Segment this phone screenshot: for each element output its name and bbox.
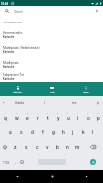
staticText: 3 [27, 112, 29, 114]
staticText: Meine [83, 91, 89, 93]
button[interactable]: Shift [0, 139, 10, 154]
staticText: w [15, 115, 19, 121]
button[interactable]: 6 [53, 109, 63, 124]
staticText: 10:54 [1, 2, 8, 5]
staticText: Last viewed on map [3, 21, 22, 23]
button[interactable]: 2 [11, 109, 22, 124]
staticText: Karlsruhe [3, 36, 15, 39]
button[interactable]: c [32, 139, 42, 154]
button[interactable]: Search [82, 154, 103, 170]
staticText: i [77, 115, 79, 121]
button[interactable]: b [52, 139, 62, 154]
button[interactable]: Meine [69, 82, 103, 96]
staticText: 4 [37, 112, 39, 114]
button[interactable]: v [42, 139, 52, 154]
button[interactable]: Home [35, 170, 69, 183]
button[interactable]: 9 [83, 109, 93, 124]
button[interactable]: Emoji [18, 154, 26, 170]
staticText: 6 [57, 112, 59, 114]
button[interactable]: g [48, 124, 58, 139]
button[interactable]: 3 [22, 109, 33, 124]
staticText: q [4, 115, 7, 121]
staticText: Marktplatz (Hebelstraße) [3, 46, 40, 50]
button[interactable]: j [68, 124, 78, 139]
button[interactable]: m [72, 139, 82, 154]
button[interactable]: , [12, 154, 18, 170]
staticText: u [67, 115, 70, 121]
button[interactable]: Voice input [92, 96, 103, 109]
staticText: p [97, 115, 100, 121]
button[interactable]: More suggestions [0, 96, 7, 109]
button[interactable]: Search [0, 6, 14, 16]
button[interactable]: a [5, 124, 16, 139]
staticText: Karlsruhe [3, 78, 15, 81]
staticText: y [57, 115, 60, 121]
staticText: l [92, 129, 94, 135]
staticText: thanks [15, 101, 24, 105]
staticText: z [14, 144, 17, 150]
staticText: o [87, 115, 90, 121]
button[interactable]: 7 [63, 109, 73, 124]
staticText: Karlsruhe [3, 66, 15, 69]
button[interactable]: Backspace [82, 139, 103, 154]
staticText: 1 [5, 112, 7, 114]
button[interactable]: Recent apps [69, 170, 103, 183]
button[interactable]: f [38, 124, 48, 139]
staticText: h [62, 129, 65, 135]
button[interactable]: 1 [0, 109, 11, 124]
staticText: Karte [50, 91, 55, 93]
staticText: 7 [67, 112, 69, 114]
button[interactable]: Back [0, 170, 35, 183]
staticText: t [47, 115, 49, 121]
button[interactable]: x [21, 139, 32, 154]
staticText: r [37, 115, 39, 121]
button[interactable]: Abfahrten [0, 82, 35, 96]
button[interactable]: Marktplatz [0, 57, 103, 72]
button[interactable]: Herrenstraße [0, 27, 103, 42]
staticText: 2 [16, 112, 18, 114]
staticText: d [31, 129, 34, 135]
button[interactable]: Marktplatz (Hebelstraße) [0, 42, 103, 57]
staticText: 9 [87, 112, 89, 114]
button[interactable]: Voice search [91, 6, 103, 16]
staticText: f [42, 129, 44, 135]
staticText: k [82, 129, 85, 135]
staticText: . [78, 160, 79, 164]
button[interactable]: thanks [7, 96, 31, 109]
button[interactable]: ?123 [0, 154, 12, 170]
button[interactable]: 4 [33, 109, 43, 124]
staticText: x [25, 144, 28, 150]
button[interactable]: I [31, 96, 57, 109]
staticText: e [26, 115, 29, 121]
button[interactable]: Erbprinzen Tor [0, 72, 103, 82]
staticText: g [52, 129, 55, 135]
staticText: 8 [77, 112, 79, 114]
button[interactable]: h [58, 124, 68, 139]
staticText: ?123 [3, 161, 10, 164]
button[interactable]: n [62, 139, 72, 154]
button[interactable]: s [16, 124, 27, 139]
staticText: Herrenstraße [3, 31, 23, 35]
button[interactable]: me [57, 96, 92, 109]
button[interactable]: Karte [35, 82, 69, 96]
staticText: j [72, 129, 74, 135]
button[interactable]: l [88, 124, 98, 139]
staticText: I [44, 101, 45, 105]
staticText: , [15, 160, 16, 164]
button[interactable]: k [78, 124, 88, 139]
staticText: 0 [97, 112, 99, 114]
staticText: Abfahrten [13, 91, 22, 93]
staticText: b [56, 144, 59, 150]
button[interactable]: z [10, 139, 21, 154]
staticText: 5 [47, 112, 49, 114]
button[interactable]: d [27, 124, 38, 139]
button[interactable]: 0 [93, 109, 103, 124]
button[interactable]: 8 [73, 109, 83, 124]
staticText: c [36, 144, 39, 150]
staticText: s [20, 129, 23, 135]
button[interactable]: 5 [43, 109, 53, 124]
staticText: me [72, 101, 77, 105]
staticText: v [46, 144, 49, 150]
